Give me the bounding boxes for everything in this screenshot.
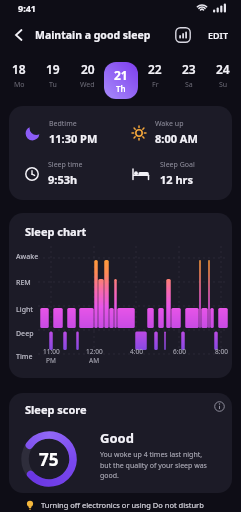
button[interactable] (175, 27, 191, 43)
staticText: 8:00 AM (155, 131, 198, 146)
button[interactable] (214, 401, 225, 412)
staticText: 20 (81, 61, 95, 77)
staticText: You woke up 4 times last night, but the … (100, 450, 207, 480)
staticText: EDIT (208, 29, 229, 41)
staticText: 75 (39, 448, 59, 471)
staticText: 9:53h (48, 172, 78, 187)
staticText: Sleep time (48, 160, 83, 170)
staticText: 24 (216, 61, 230, 77)
button[interactable]: 21 (104, 62, 138, 99)
staticText: Maintain a good sleep (35, 28, 151, 42)
staticText: 11:30 PM (49, 131, 98, 146)
button[interactable]: 23 (182, 61, 196, 90)
staticText: AM (89, 356, 100, 365)
staticText: 18 (12, 61, 26, 77)
staticText: 12:00 (86, 347, 103, 356)
staticText: Su (219, 80, 228, 90)
staticText: Wed (80, 80, 95, 90)
staticText: 11:00 (43, 347, 60, 356)
staticText: Tu (49, 80, 57, 90)
staticText: PM (46, 356, 56, 365)
staticText: Bedtime (49, 119, 77, 129)
staticText: 6:00 (173, 347, 186, 356)
staticText: Awake (16, 252, 39, 262)
staticText: 21 (114, 67, 128, 83)
staticText: Sleep score (25, 402, 87, 417)
staticText: 12 hrs (160, 172, 194, 187)
staticText: Wake up (155, 119, 184, 129)
staticText: Time (16, 352, 33, 362)
staticText: Sleep Goal (160, 160, 195, 170)
button[interactable] (8, 24, 30, 46)
staticText: Sleep chart (25, 224, 87, 239)
button[interactable]: 24 (216, 61, 230, 90)
staticText: Fr (152, 80, 159, 90)
staticText: Good (100, 429, 134, 447)
button[interactable]: 18 (12, 61, 26, 90)
button[interactable]: EDIT (208, 29, 229, 41)
staticText: 19 (46, 61, 60, 77)
button[interactable]: 22 (148, 61, 162, 90)
button[interactable]: Turning off electronics or using Do not … (25, 497, 241, 512)
staticText: 4:00 (130, 347, 143, 356)
staticText: 9:41 (18, 2, 36, 14)
button[interactable]: 20 (80, 61, 95, 90)
staticText: Mo (14, 80, 25, 90)
staticText: 23 (182, 61, 196, 77)
staticText: Sa (185, 80, 193, 90)
staticText: 22 (148, 61, 162, 77)
staticText: Deep (16, 329, 34, 339)
staticText: Light (16, 305, 34, 315)
staticText: Th (116, 83, 126, 94)
staticText: Turning off electronics or using Do not … (41, 500, 204, 510)
button[interactable]: 19 (46, 61, 60, 90)
staticText: 8:00 (215, 347, 228, 356)
staticText: REM (16, 278, 31, 288)
